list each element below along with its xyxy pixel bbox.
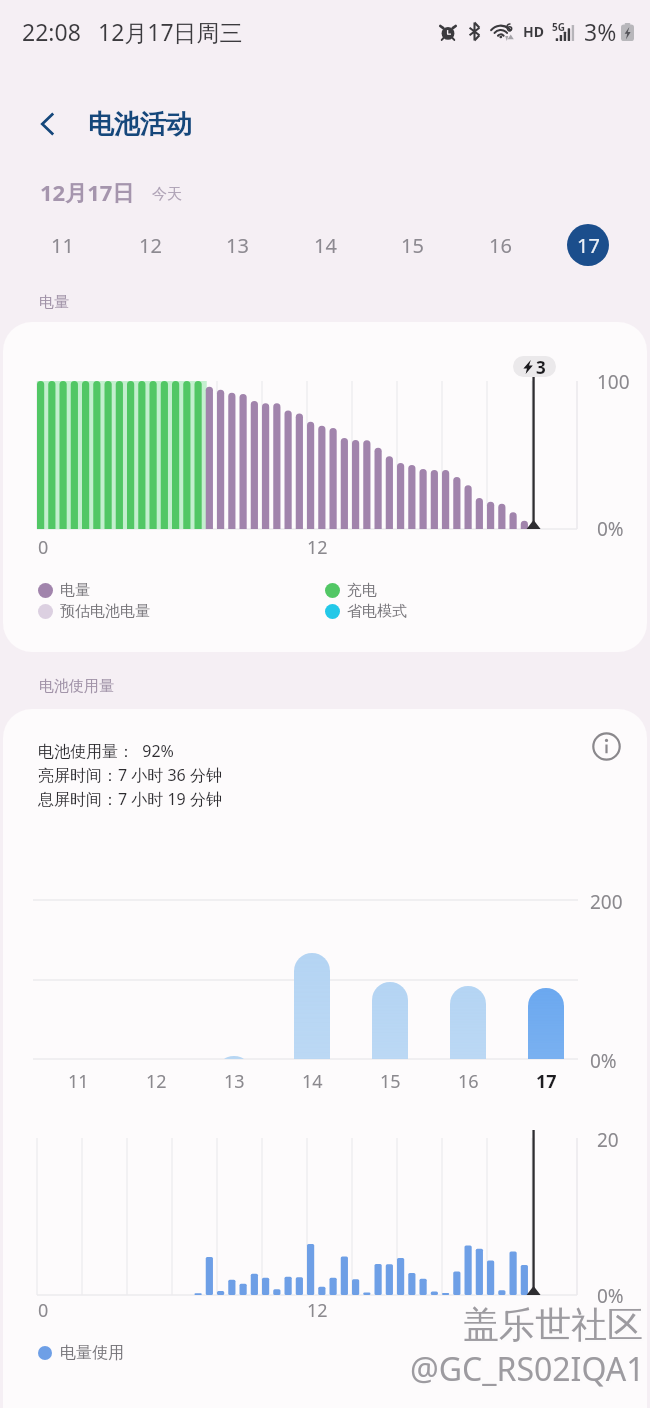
staticText: 电池活动 — [88, 108, 192, 141]
staticText: 省电模式 — [347, 602, 407, 621]
staticText: 电量 — [60, 581, 90, 600]
staticText: 12月17日周三 — [98, 16, 243, 47]
staticText: 20 — [597, 1127, 619, 1153]
staticText: 22:08 — [22, 16, 81, 47]
button[interactable]: Back — [22, 98, 74, 150]
staticText: 16 — [458, 1069, 479, 1094]
staticText: @GC_RS02IQA1 — [410, 1347, 645, 1391]
button[interactable]: 16 — [474, 219, 526, 271]
staticText: 14 — [314, 232, 337, 259]
staticText: 充电 — [347, 581, 377, 600]
staticText: 盖乐世社区 — [465, 1304, 645, 1349]
staticText: 电池使用量 — [39, 677, 114, 696]
staticText: 亮屏时间：7 小时 36 分钟 — [38, 764, 222, 786]
staticText: 15 — [380, 1069, 401, 1094]
staticText: 0% — [597, 1283, 624, 1309]
staticText: 12 — [146, 1069, 167, 1094]
button[interactable]: 13 — [211, 219, 263, 271]
staticText: 预估电池电量 — [60, 602, 150, 621]
button[interactable]: 15 — [386, 219, 438, 271]
staticText: 16 — [489, 232, 512, 259]
staticText: 3 — [536, 356, 546, 377]
staticText: 5G — [552, 20, 565, 34]
button[interactable]: 12 — [124, 219, 176, 271]
staticText: 3% — [584, 16, 617, 47]
staticText: 12 — [307, 535, 328, 560]
staticText: 今天 — [152, 185, 182, 204]
staticText: 12 — [139, 232, 162, 259]
staticText: 0% — [590, 1048, 617, 1074]
staticText: 17 — [577, 232, 600, 259]
staticText: 11 — [51, 232, 74, 259]
button[interactable]: 11 — [36, 219, 88, 271]
staticText: 13 — [226, 232, 249, 259]
staticText: 0% — [597, 516, 624, 542]
button[interactable]: 17 — [562, 219, 614, 271]
staticText: 电量使用 — [60, 1343, 124, 1363]
staticText: 17 — [536, 1069, 557, 1094]
staticText: 0 — [38, 535, 49, 560]
staticText: @GC_RS02IQA1 — [412, 1349, 647, 1393]
staticText: 200 — [590, 889, 623, 915]
staticText: 电池使用量： 92% — [38, 740, 174, 762]
staticText: 11 — [68, 1069, 89, 1094]
staticText: 电量 — [39, 293, 69, 312]
staticText: 100 — [597, 369, 630, 395]
staticText: 13 — [224, 1069, 245, 1094]
button[interactable]: 14 — [299, 219, 351, 271]
staticText: 12 — [307, 1298, 328, 1323]
staticText: 14 — [302, 1069, 323, 1094]
staticText: 12月17日 — [40, 177, 135, 207]
staticText: 0 — [38, 1298, 49, 1323]
staticText: 息屏时间：7 小时 19 分钟 — [38, 788, 222, 810]
staticText: 15 — [401, 232, 424, 259]
staticText: 盖乐世社区 — [463, 1302, 643, 1347]
staticText: HD — [523, 22, 544, 41]
button[interactable]: Info — [578, 718, 634, 774]
